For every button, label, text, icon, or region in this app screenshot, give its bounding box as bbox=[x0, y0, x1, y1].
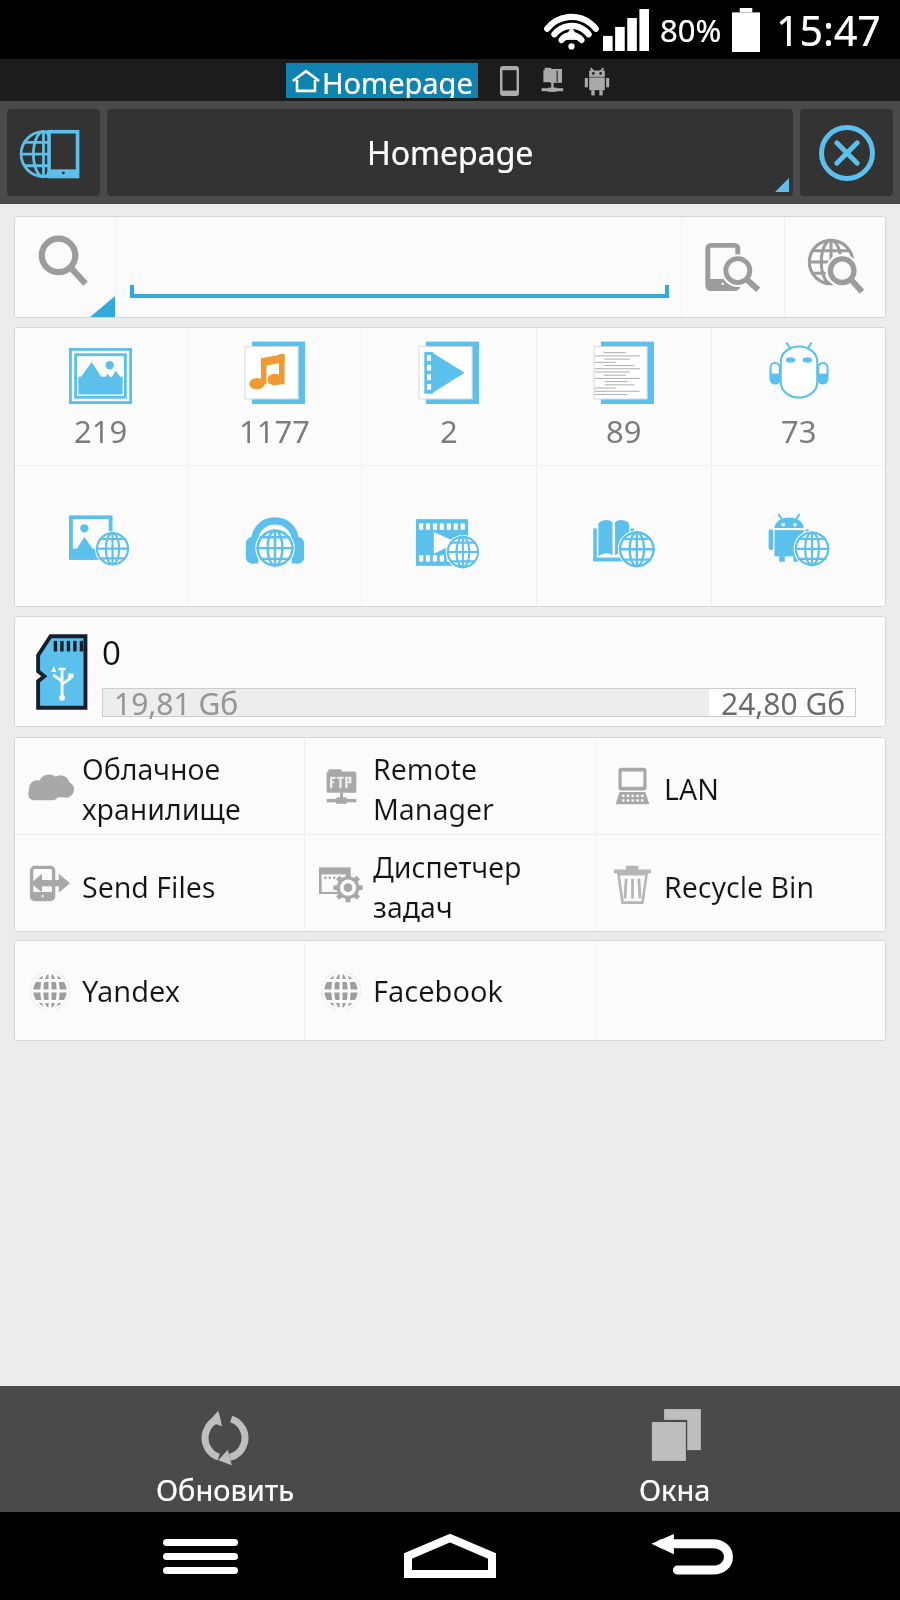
button[interactable]: Search device bbox=[682, 216, 784, 318]
button[interactable]: Remote Manager bbox=[305, 737, 595, 834]
staticText: 19,81 Gб bbox=[114, 683, 239, 724]
button[interactable] bbox=[116, 216, 681, 318]
staticText: 89 bbox=[606, 410, 642, 452]
button[interactable]: Category bbox=[188, 466, 361, 607]
button[interactable]: Apps tab bbox=[580, 64, 614, 98]
button[interactable]: Close bbox=[800, 109, 893, 196]
staticText: Обновить bbox=[156, 1470, 295, 1509]
button[interactable]: Device tab bbox=[492, 64, 526, 98]
staticText: Recycle Bin bbox=[664, 868, 815, 907]
button[interactable]: 2 bbox=[362, 327, 536, 465]
button[interactable]: 1177 bbox=[188, 327, 361, 465]
button[interactable]: Homepage bbox=[107, 109, 793, 196]
staticText: 73 bbox=[781, 410, 817, 452]
staticText: 1177 bbox=[239, 410, 310, 452]
staticText: Facebook bbox=[373, 971, 504, 1010]
button[interactable]: 219 bbox=[14, 327, 187, 465]
staticText: 24,80 Gб bbox=[721, 683, 846, 724]
button[interactable]: Search bbox=[14, 216, 115, 318]
button[interactable]: Обновить bbox=[0, 1386, 450, 1512]
button[interactable]: Facebook bbox=[305, 940, 595, 1041]
button[interactable]: 73 bbox=[712, 327, 886, 465]
button[interactable]: Recycle Bin bbox=[596, 835, 886, 932]
staticText: Send Files bbox=[82, 868, 216, 907]
button[interactable]: Homepage bbox=[286, 63, 478, 98]
staticText: 219 bbox=[74, 410, 128, 452]
staticText: Окна bbox=[639, 1470, 711, 1509]
staticText: 80% bbox=[660, 9, 722, 51]
button[interactable]: Диспетчер задач bbox=[305, 835, 595, 932]
staticText: LAN bbox=[664, 770, 719, 809]
button[interactable]: Category bbox=[14, 466, 187, 607]
button[interactable]: LAN bbox=[596, 737, 886, 834]
button[interactable]: Category bbox=[537, 466, 711, 607]
staticText: Облачное хранилище bbox=[82, 750, 241, 829]
button[interactable]: 0 bbox=[14, 616, 886, 727]
button[interactable]: Home bbox=[390, 1512, 510, 1600]
button[interactable]: Search web bbox=[785, 216, 886, 318]
button[interactable]: Send Files bbox=[14, 835, 304, 932]
button[interactable]: Category bbox=[712, 466, 886, 607]
button[interactable]: Category bbox=[362, 466, 536, 607]
staticText: Remote Manager bbox=[373, 750, 494, 829]
button[interactable]: 89 bbox=[537, 327, 711, 465]
staticText: 2 bbox=[440, 410, 458, 452]
button[interactable]: Back bbox=[640, 1512, 750, 1600]
button[interactable]: Окна bbox=[450, 1386, 900, 1512]
staticText: Диспетчер задач bbox=[373, 848, 522, 927]
button[interactable]: Browser bbox=[7, 109, 100, 196]
staticText: 0 bbox=[102, 630, 121, 675]
button[interactable]: Yandex bbox=[14, 940, 304, 1041]
staticText: Homepage bbox=[322, 63, 473, 98]
staticText: 15:47 bbox=[776, 2, 881, 58]
button[interactable]: Menu bbox=[150, 1512, 250, 1600]
staticText: Homepage bbox=[367, 131, 534, 175]
button[interactable]: Облачное хранилище bbox=[14, 737, 304, 834]
staticText: Yandex bbox=[82, 971, 181, 1010]
button[interactable]: Network tab bbox=[536, 64, 570, 98]
